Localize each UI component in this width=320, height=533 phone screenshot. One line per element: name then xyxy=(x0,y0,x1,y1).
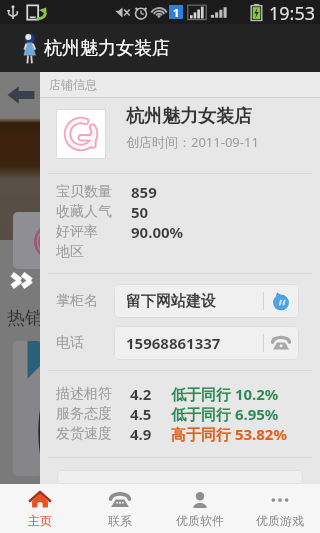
staticText: 4.5 xyxy=(130,404,152,424)
button[interactable]: 联系 xyxy=(80,484,160,533)
staticText: 留下网站建设 xyxy=(126,292,216,311)
staticText: 创店时间：2011-09-11 xyxy=(126,133,259,151)
staticText: 杭州魅力女装店 xyxy=(44,37,170,60)
staticText: 15968861337 xyxy=(126,333,221,353)
button[interactable] xyxy=(57,470,303,484)
staticText: 服务态度 xyxy=(56,405,112,423)
staticText: 50 xyxy=(131,202,149,222)
staticText: 地区 xyxy=(56,243,84,261)
staticText: 优质游戏 xyxy=(256,513,304,528)
button[interactable]: 留下网站建设 xyxy=(114,284,299,318)
staticText: 杭州魅力女装店 xyxy=(126,105,252,128)
staticText: 90.00% xyxy=(131,222,184,242)
staticText: 发货速度 xyxy=(56,425,112,443)
staticText: 低于同行 6.95% xyxy=(171,404,279,424)
staticText: 高于同行 53.82% xyxy=(171,424,287,444)
staticText: 热销 xyxy=(7,307,43,330)
staticText: 19:53 xyxy=(269,1,316,25)
staticText: 联系 xyxy=(108,513,132,528)
staticText: 收藏人气 xyxy=(56,203,112,221)
staticText: 好评率 xyxy=(56,223,98,241)
staticText: 主页 xyxy=(28,513,52,528)
staticText: 859 xyxy=(131,182,157,202)
button[interactable]: Back xyxy=(7,85,35,105)
staticText: 宝贝数量 xyxy=(56,183,112,201)
button[interactable]: 主页 xyxy=(0,484,80,533)
staticText: 描述相符 xyxy=(56,385,112,403)
staticText: 1 xyxy=(173,5,180,19)
button[interactable]: 15968861337 xyxy=(114,326,299,360)
staticText: 掌柜名 xyxy=(56,292,98,310)
staticText: 店铺信息 xyxy=(49,77,97,92)
button[interactable]: 优质游戏 xyxy=(240,484,320,533)
staticText: 低于同行 10.2% xyxy=(171,384,279,404)
staticText: 电话 xyxy=(56,334,84,352)
staticText: 4.2 xyxy=(130,384,152,404)
button[interactable]: 优质软件 xyxy=(160,484,240,533)
staticText: 4.9 xyxy=(130,424,152,444)
staticText: 优质软件 xyxy=(176,513,224,528)
